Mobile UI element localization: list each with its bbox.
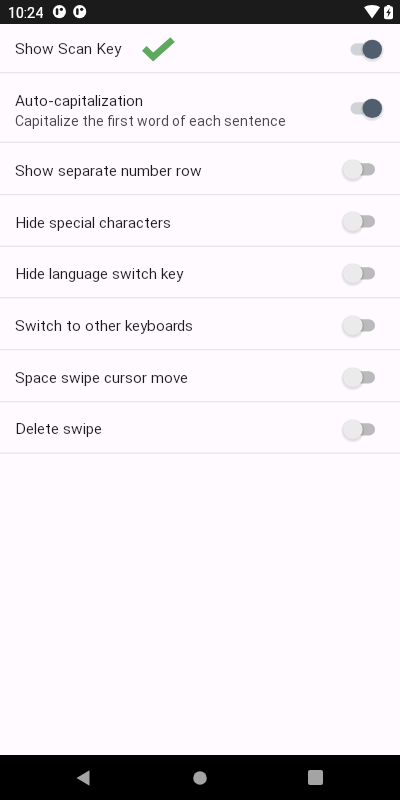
staticText: Hide special characters bbox=[15, 214, 171, 232]
staticText: Auto-capitalization bbox=[15, 92, 143, 110]
staticText: Show separate number row bbox=[15, 162, 202, 180]
staticText: Show Scan Key bbox=[15, 40, 121, 58]
button[interactable]: Hide special characters bbox=[0, 195, 400, 247]
staticText: Capitalize the first word of each senten… bbox=[15, 113, 286, 129]
button[interactable]: Show Scan Key bbox=[0, 24, 400, 73]
staticText: Delete swipe bbox=[15, 420, 102, 438]
staticText: Hide language switch key bbox=[15, 265, 183, 283]
button[interactable]: Space swipe cursor move bbox=[0, 351, 400, 403]
button[interactable]: Auto-capitalization bbox=[0, 73, 400, 143]
button[interactable]: Recent apps bbox=[291, 755, 339, 800]
button[interactable]: Home bbox=[176, 755, 224, 800]
button[interactable]: Show separate number row bbox=[0, 143, 400, 195]
staticText: Space swipe cursor move bbox=[15, 369, 188, 387]
button[interactable]: Hide language switch key bbox=[0, 247, 400, 299]
button[interactable]: Switch to other keyboards bbox=[0, 299, 400, 351]
staticText: 10:24 bbox=[8, 5, 43, 21]
staticText: Switch to other keyboards bbox=[15, 317, 194, 335]
button[interactable]: Back bbox=[59, 755, 107, 800]
button[interactable]: Delete swipe bbox=[0, 403, 400, 455]
